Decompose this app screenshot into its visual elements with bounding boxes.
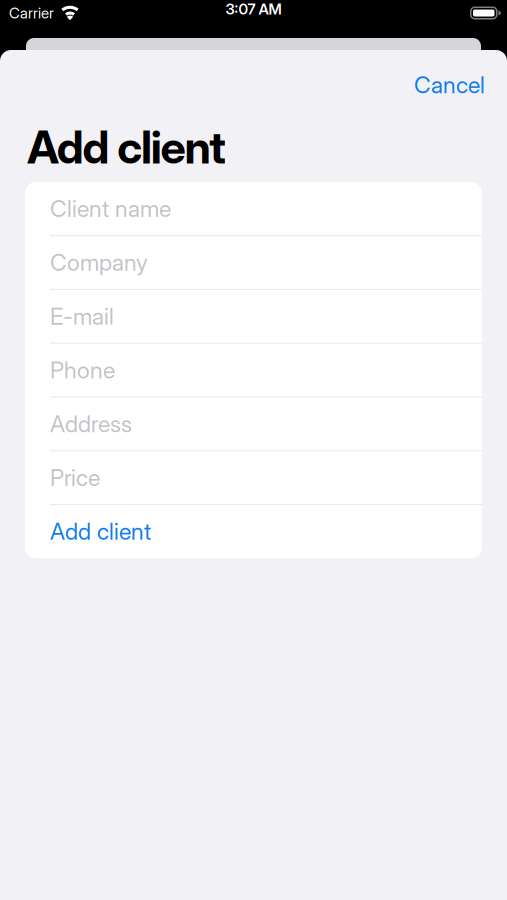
staticText: Address <box>50 410 132 438</box>
button[interactable]: Phone <box>25 344 482 396</box>
button[interactable]: Address <box>25 397 482 450</box>
staticText: Add client <box>50 518 151 545</box>
staticText: Add client <box>27 120 226 174</box>
staticText: E-mail <box>50 302 114 330</box>
button[interactable]: Price <box>25 451 482 504</box>
button[interactable]: Add client <box>25 505 482 558</box>
staticText: Phone <box>50 356 115 384</box>
staticText: Price <box>50 464 100 492</box>
staticText: Company <box>50 249 148 276</box>
staticText: 3:07 AM <box>225 0 281 18</box>
staticText: Cancel <box>414 71 485 99</box>
button[interactable]: E-mail <box>25 290 482 343</box>
button[interactable]: Cancel <box>414 71 485 99</box>
staticText: Client name <box>50 195 171 223</box>
button[interactable]: Client name <box>25 182 482 235</box>
staticText: Carrier <box>9 4 54 22</box>
button[interactable]: Company <box>25 236 482 289</box>
